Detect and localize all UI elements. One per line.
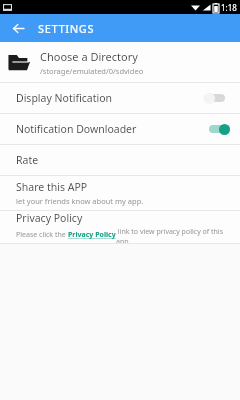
button[interactable]: Notification Downloader — [0, 114, 240, 144]
button[interactable]: Privacy Policy — [0, 211, 240, 243]
staticText: Share this APP — [16, 180, 88, 194]
staticText: Notification Downloader — [16, 122, 204, 136]
staticText: Rate — [16, 153, 39, 167]
staticText: let your friends know about my app. — [16, 196, 144, 206]
button[interactable]: Display Notification — [0, 83, 240, 113]
button[interactable]: Rate — [0, 145, 240, 175]
staticText: SETTINGS — [38, 21, 95, 36]
staticText: Choose a Directory — [40, 49, 138, 64]
staticText: link to view privacy policy of this app — [116, 227, 232, 243]
button[interactable]: Privacy Policy — [68, 230, 116, 240]
staticText: 1:18 — [221, 2, 237, 13]
staticText: Please click the — [16, 230, 68, 240]
staticText: /storage/emulated/0/sdvideo — [40, 66, 144, 76]
button[interactable]: Choose a Directory — [0, 42, 240, 82]
button[interactable]: Back — [6, 16, 30, 40]
staticText: Privacy Policy — [16, 211, 83, 225]
button[interactable]: Share this APP — [0, 176, 240, 210]
staticText: Display Notification — [16, 91, 204, 105]
